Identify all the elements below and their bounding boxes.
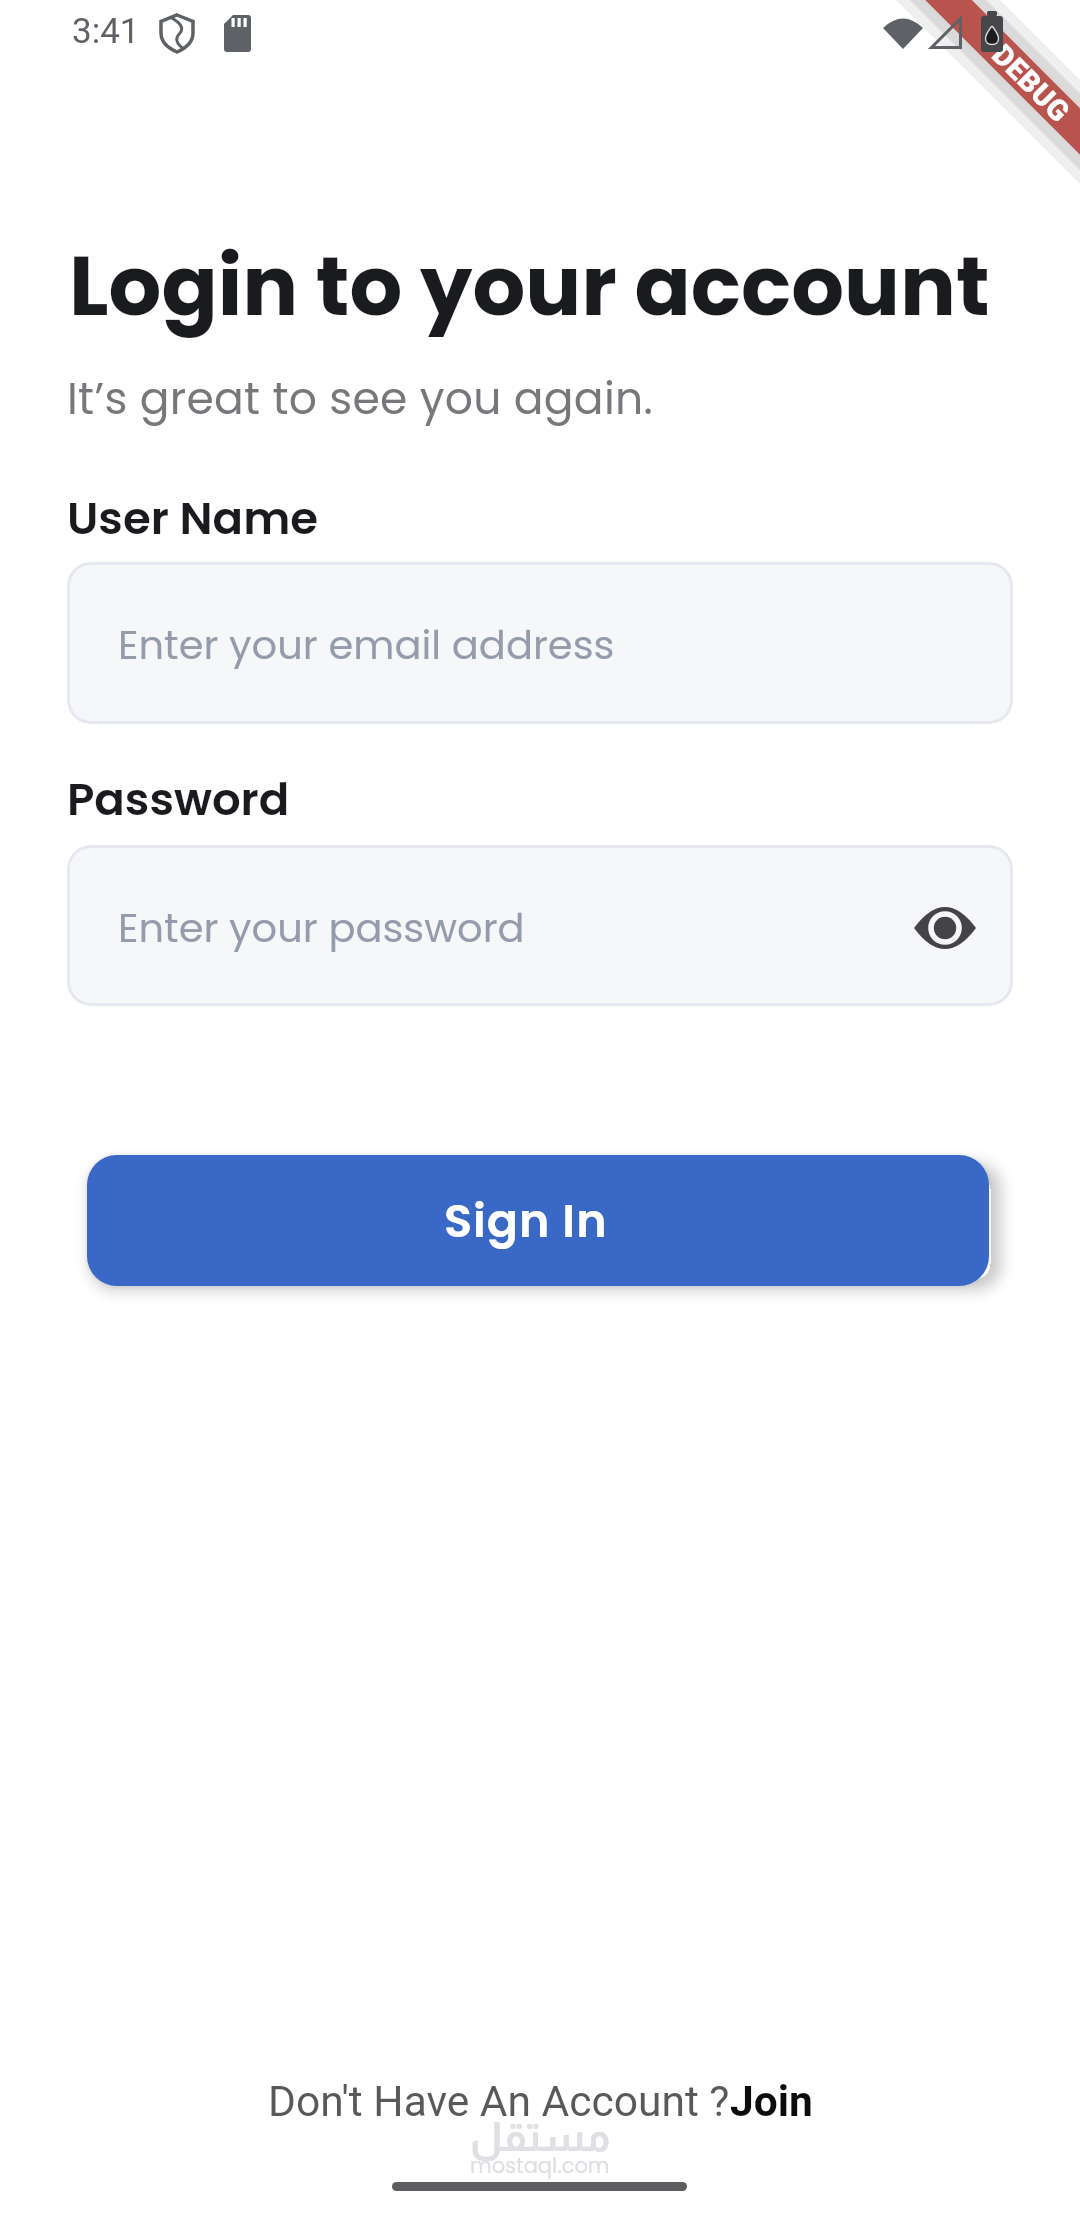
staticText: Sign In [444,1189,608,1253]
staticText: DEBUG [986,38,1077,129]
staticText: It’s great to see you again. [67,368,654,430]
staticText: mostaql.com [470,2151,610,2180]
button[interactable]: Enter your email address [67,562,1013,724]
staticText: 3:41 [72,11,140,52]
staticText: Don't Have An Account ? [268,2077,730,2127]
staticText: Enter your password [118,900,525,956]
button[interactable]: Join [730,2077,813,2127]
staticText: مستقل [470,2115,611,2160]
button[interactable]: Enter your password [67,845,1013,1006]
button[interactable]: Sign In [87,1155,989,1286]
staticText: Enter your email address [118,617,615,673]
staticText: User Name [67,487,319,550]
staticText: Login to your account [69,228,990,344]
staticText: Password [67,768,290,831]
button[interactable] [914,906,976,950]
